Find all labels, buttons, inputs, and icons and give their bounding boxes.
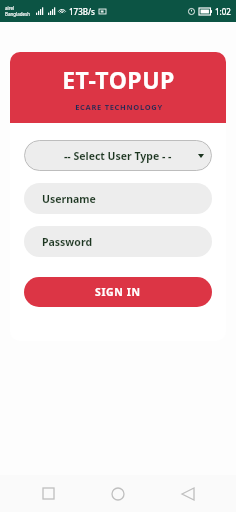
- staticText: Bangladesh: [5, 11, 30, 17]
- staticText: Username: [42, 192, 96, 206]
- button[interactable]: SIGN IN: [24, 277, 212, 307]
- button[interactable]: Username: [24, 183, 212, 214]
- button[interactable]: Back: [166, 475, 210, 512]
- button[interactable]: -- Select User Type - -: [24, 140, 212, 171]
- staticText: SIGN IN: [95, 285, 141, 299]
- staticText: -- Select User Type - -: [64, 149, 172, 163]
- button[interactable]: Password: [24, 226, 212, 257]
- staticText: ET-TOPUP: [62, 64, 175, 95]
- staticText: ECARE TECHNOLOGY: [75, 102, 163, 112]
- staticText: Password: [42, 235, 93, 249]
- staticText: 173B/s: [69, 6, 95, 17]
- staticText: airel: [5, 5, 15, 11]
- button[interactable]: Recents: [26, 475, 70, 512]
- button[interactable]: Home: [96, 475, 140, 512]
- staticText: 1:02: [215, 6, 231, 17]
